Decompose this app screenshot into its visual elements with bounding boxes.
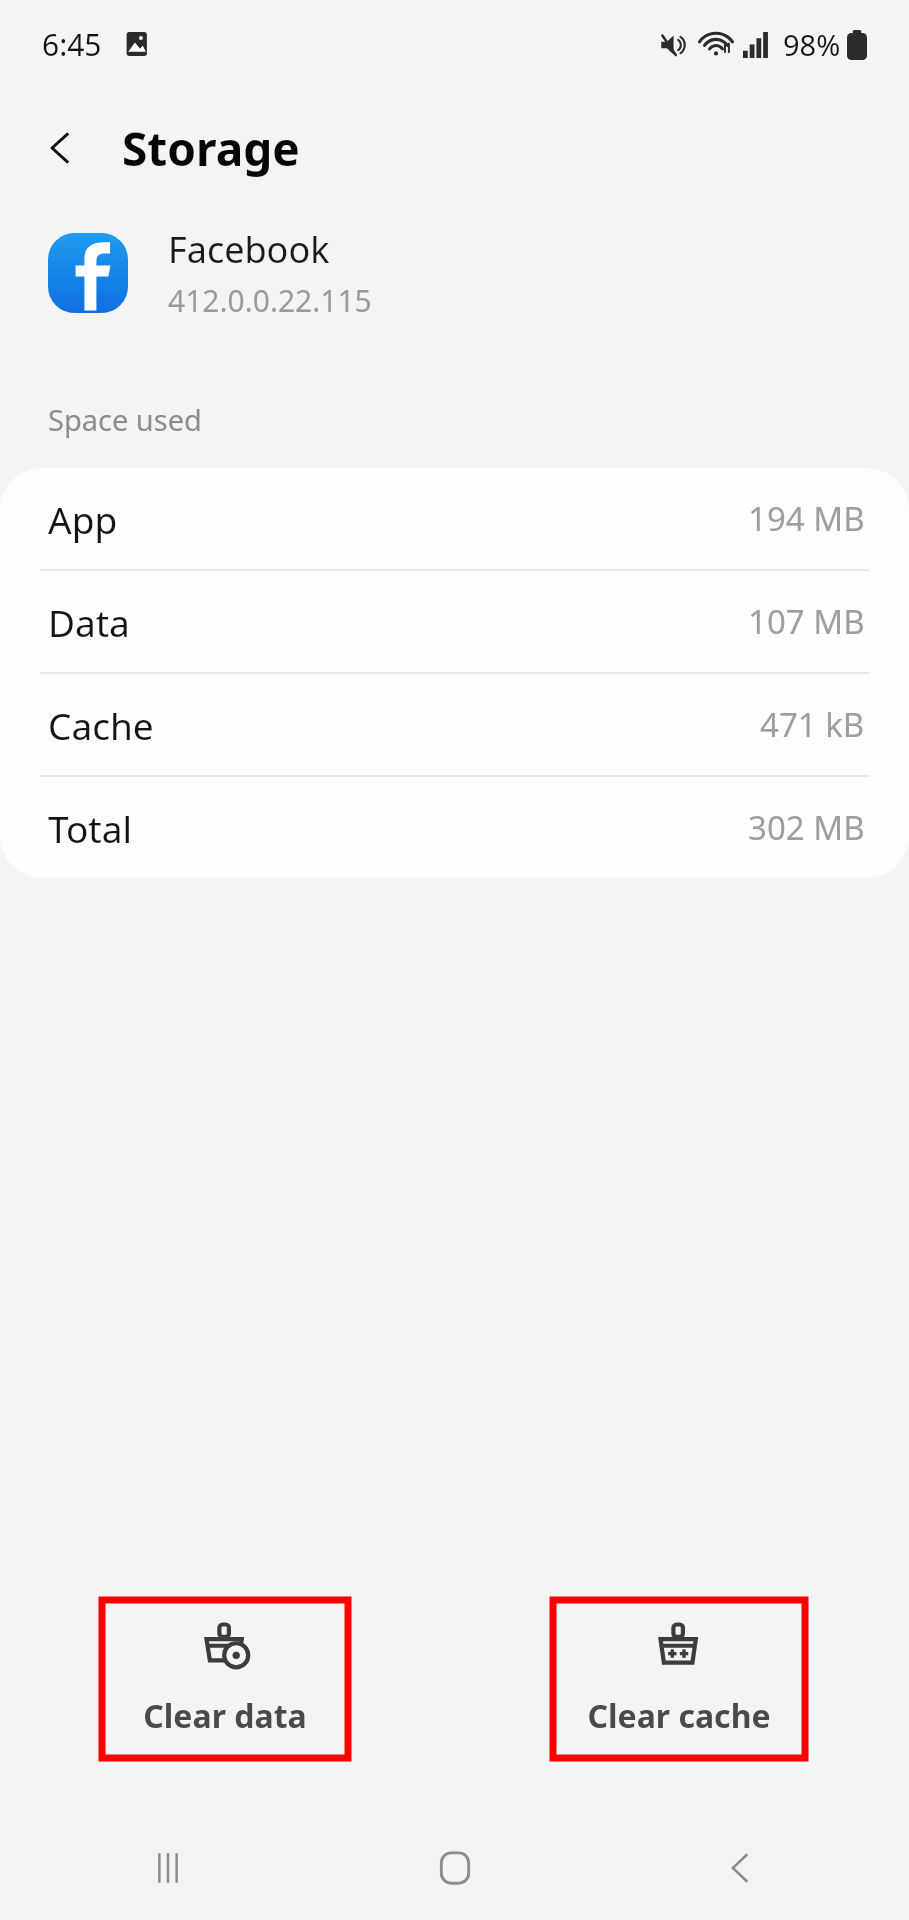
other: Clear cache [651,1620,707,1676]
staticText: 471 kB [760,702,865,747]
button[interactable]: Recents [128,1828,208,1908]
button[interactable]: Cache [0,674,909,775]
staticText: 194 MB [748,496,865,541]
button[interactable]: Back [28,115,94,181]
button[interactable]: Clear data [100,1598,350,1760]
button[interactable]: Data [0,571,909,672]
staticText: App [48,494,118,544]
staticText: Space used [48,400,202,439]
staticText: Clear cache [587,1694,771,1738]
staticText: Storage [122,117,300,180]
staticText: 412.0.0.22.115 [168,280,372,321]
staticText: 6:45 [42,24,102,65]
other: Clear data [197,1620,253,1676]
button[interactable]: App [0,468,909,569]
button[interactable]: Total [0,777,909,878]
button[interactable]: Clear cache [551,1598,807,1760]
staticText: 98% [783,25,841,64]
staticText: Data [48,597,130,647]
staticText: Cache [48,700,154,750]
staticText: 107 MB [748,599,865,644]
staticText: Facebook [168,225,330,274]
button[interactable]: Back [701,1828,781,1908]
button[interactable]: Home [415,1828,495,1908]
staticText: Clear data [143,1694,307,1738]
staticText: 302 MB [748,805,865,850]
staticText: Total [48,803,133,853]
